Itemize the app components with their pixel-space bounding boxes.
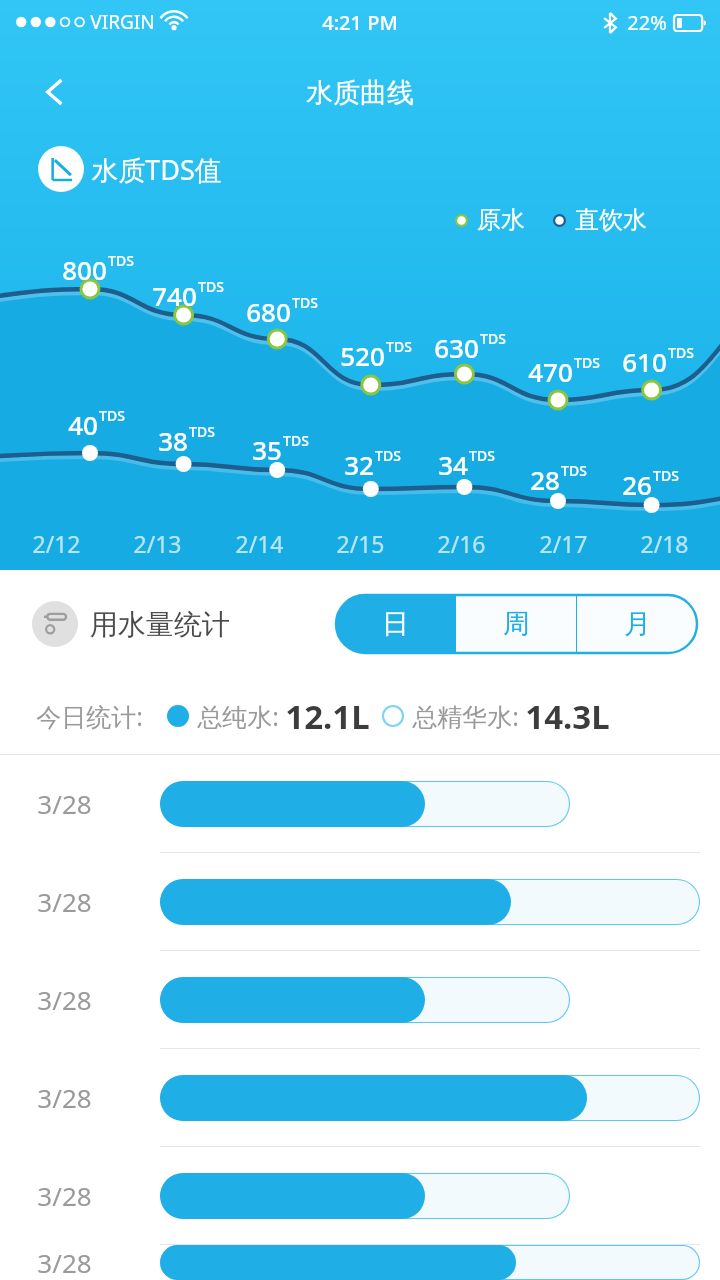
staticText: 800: [62, 252, 107, 287]
staticText: TDS: [668, 343, 694, 362]
staticText: 3/28: [37, 1178, 92, 1213]
staticText: 35: [252, 432, 282, 467]
staticText: TDS: [386, 337, 412, 356]
staticText: 610: [622, 344, 667, 379]
staticText: 周: [503, 607, 530, 641]
staticText: 用水量统计: [90, 607, 230, 642]
button[interactable]: Back: [24, 60, 88, 124]
staticText: 3/28: [37, 982, 92, 1017]
staticText: 32: [344, 447, 374, 482]
button[interactable]: 3/28: [0, 1245, 720, 1280]
staticText: 3/28: [37, 786, 92, 821]
staticText: TDS: [480, 329, 506, 348]
staticText: 今日统计:: [36, 699, 143, 733]
staticText: TDS: [99, 406, 125, 425]
staticText: 总纯水:: [197, 699, 279, 733]
staticText: 520: [340, 338, 385, 373]
staticText: 4:21 PM: [322, 9, 398, 36]
staticText: 3/28: [37, 884, 92, 919]
staticText: 470: [528, 354, 573, 389]
staticText: 22%: [627, 9, 667, 36]
staticText: TDS: [561, 461, 587, 480]
staticText: 直饮水: [575, 205, 647, 235]
staticText: 2/16: [437, 528, 486, 559]
staticText: 2/12: [32, 528, 81, 559]
staticText: TDS: [469, 446, 495, 465]
button[interactable]: 3/28: [0, 951, 720, 1048]
staticText: TDS: [283, 431, 309, 450]
staticText: 水质TDS值: [91, 151, 222, 188]
button[interactable]: 月: [577, 595, 697, 653]
staticText: TDS: [198, 277, 224, 296]
staticText: 26: [622, 467, 652, 502]
staticText: 2/13: [133, 528, 182, 559]
staticText: 3/28: [37, 1245, 92, 1280]
staticText: 总精华水:: [412, 699, 519, 733]
staticText: 水质曲线: [306, 76, 414, 110]
staticText: TDS: [189, 422, 215, 441]
staticText: 月: [624, 607, 651, 641]
button[interactable]: 3/28: [0, 853, 720, 950]
staticText: 40: [68, 407, 98, 442]
staticText: 630: [434, 330, 479, 365]
staticText: VIRGIN: [90, 9, 155, 35]
staticText: 28: [530, 462, 560, 497]
button[interactable]: 3/28: [0, 1147, 720, 1244]
button[interactable]: 3/28: [0, 1049, 720, 1146]
staticText: 12.1L: [285, 694, 370, 739]
staticText: 2/18: [640, 528, 689, 559]
staticText: 2/15: [336, 528, 385, 559]
staticText: TDS: [375, 446, 401, 465]
button[interactable]: 3/28: [0, 755, 720, 852]
staticText: TDS: [653, 466, 679, 485]
staticText: 14.3L: [525, 694, 610, 739]
button[interactable]: 日: [336, 595, 455, 653]
staticText: TDS: [574, 353, 600, 372]
staticText: TDS: [108, 251, 134, 270]
staticText: 680: [246, 294, 291, 329]
staticText: 34: [438, 447, 468, 482]
staticText: 2/17: [539, 528, 588, 559]
staticText: 740: [152, 278, 197, 313]
staticText: 38: [158, 423, 188, 458]
button[interactable]: 周: [456, 595, 576, 653]
staticText: 日: [382, 607, 409, 641]
staticText: 3/28: [37, 1080, 92, 1115]
staticText: TDS: [292, 293, 318, 312]
staticText: 2/14: [235, 528, 284, 559]
staticText: 原水: [477, 205, 525, 235]
